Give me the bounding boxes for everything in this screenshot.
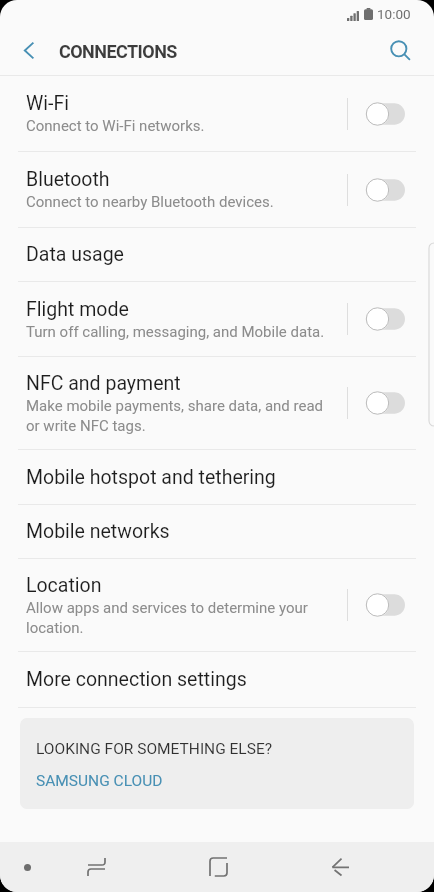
button[interactable]: Location: [0, 559, 434, 651]
button[interactable]: Home: [190, 842, 246, 892]
staticText: Mobile networks: [26, 520, 170, 543]
staticText: Make mobile payments, share data, and re…: [26, 397, 331, 434]
staticText: CONNECTIONS: [59, 41, 177, 62]
button[interactable]: Data usage: [0, 228, 434, 281]
button[interactable]: NFC and payment: [0, 357, 434, 449]
button[interactable]: Bluetooth: [0, 152, 434, 227]
staticText: Turn off calling, messaging, and Mobile …: [26, 323, 325, 341]
button[interactable]: Mobile hotspot and tethering: [0, 450, 434, 504]
staticText: Bluetooth: [26, 168, 110, 191]
staticText: Connect to Wi-Fi networks.: [26, 117, 205, 135]
button[interactable]: Mobile networks: [0, 505, 434, 558]
button[interactable]: Navigate up: [0, 28, 48, 75]
button[interactable]: Recent apps: [68, 842, 124, 892]
staticText: Data usage: [26, 243, 124, 266]
staticText: Allow apps and services to determine you…: [26, 599, 331, 636]
staticText: Wi-Fi: [26, 92, 69, 115]
staticText: SAMSUNG CLOUD: [36, 772, 163, 790]
staticText: LOOKING FOR SOMETHING ELSE?: [36, 740, 273, 758]
staticText: More connection settings: [26, 668, 247, 691]
staticText: Mobile hotspot and tethering: [26, 466, 276, 489]
staticText: Flight mode: [26, 298, 129, 321]
staticText: NFC and payment: [26, 372, 181, 395]
button[interactable]: Back: [312, 842, 368, 892]
button[interactable]: Wi-Fi: [0, 76, 434, 151]
staticText: Connect to nearby Bluetooth devices.: [26, 193, 274, 211]
button[interactable]: Flight mode: [0, 282, 434, 356]
button[interactable]: Search: [386, 28, 434, 75]
button[interactable]: LOOKING FOR SOMETHING ELSE?: [20, 718, 414, 809]
staticText: Location: [26, 574, 102, 597]
staticText: 10:00: [377, 6, 411, 22]
button[interactable]: More connection settings: [0, 652, 434, 707]
